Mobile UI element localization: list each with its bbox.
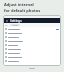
button[interactable]	[3, 39, 61, 43]
staticText: All	[5, 24, 8, 27]
staticText: Settings	[10, 19, 22, 23]
button[interactable]: Filter	[10, 24, 20, 26]
staticText: Filter	[13, 24, 18, 26]
button[interactable]	[3, 43, 61, 47]
button[interactable]	[3, 51, 61, 55]
button[interactable]	[3, 55, 61, 59]
button[interactable]	[3, 31, 61, 35]
button[interactable]	[3, 35, 61, 39]
staticText: Adjust internal	[4, 2, 34, 7]
button[interactable]: Menu	[5, 19, 8, 22]
button[interactable]	[3, 59, 61, 63]
button[interactable]	[3, 27, 61, 31]
staticText: for default photos	[4, 8, 41, 13]
button[interactable]	[3, 47, 61, 51]
